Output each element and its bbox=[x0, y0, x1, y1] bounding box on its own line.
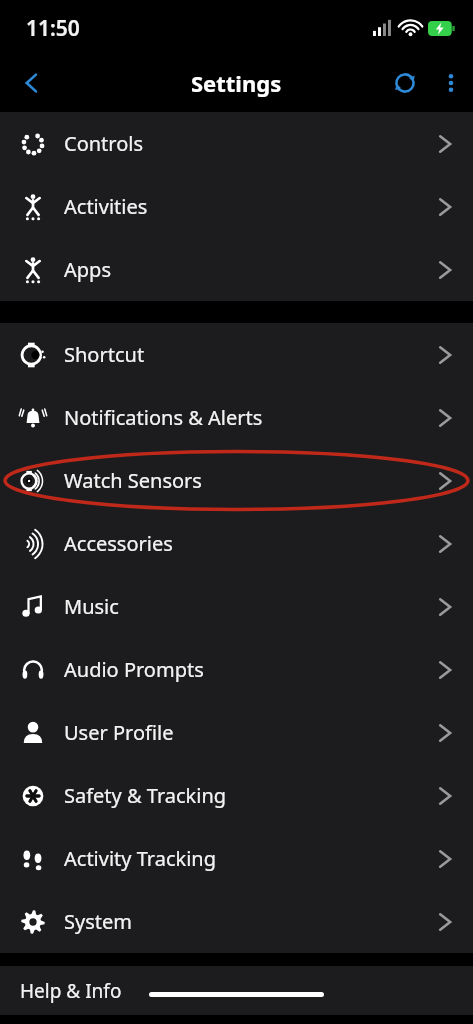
button[interactable]: Audio Prompts bbox=[0, 638, 473, 701]
button[interactable]: Back bbox=[8, 59, 56, 107]
staticText: 11:50 bbox=[26, 14, 80, 43]
button[interactable]: Activities bbox=[0, 175, 473, 238]
button[interactable]: Notifications & Alerts bbox=[0, 386, 473, 449]
button[interactable]: Help & Info bbox=[6, 970, 136, 1012]
staticText: Accessories bbox=[64, 530, 173, 557]
staticText: Shortcut bbox=[64, 341, 145, 368]
button[interactable]: Sync bbox=[381, 59, 429, 107]
staticText: System bbox=[64, 908, 132, 935]
button[interactable]: Safety & Tracking bbox=[0, 764, 473, 827]
staticText: Notifications & Alerts bbox=[64, 404, 263, 431]
staticText: Controls bbox=[64, 130, 144, 157]
staticText: Activity Tracking bbox=[64, 845, 216, 872]
button[interactable]: System bbox=[0, 890, 473, 953]
staticText: Music bbox=[64, 593, 119, 620]
button[interactable]: User Profile bbox=[0, 701, 473, 764]
button[interactable]: Accessories bbox=[0, 512, 473, 575]
button[interactable]: Controls bbox=[0, 112, 473, 175]
button[interactable]: Music bbox=[0, 575, 473, 638]
staticText: Audio Prompts bbox=[64, 656, 204, 683]
button[interactable]: Shortcut bbox=[0, 323, 473, 386]
staticText: Help & Info bbox=[20, 978, 122, 1004]
staticText: Safety & Tracking bbox=[64, 782, 227, 809]
button[interactable]: Activity Tracking bbox=[0, 827, 473, 890]
button[interactable]: Apps bbox=[0, 238, 473, 301]
staticText: Apps bbox=[64, 256, 111, 283]
button[interactable]: More options bbox=[429, 61, 473, 105]
button[interactable]: Watch Sensors bbox=[0, 449, 473, 512]
staticText: Activities bbox=[64, 193, 148, 220]
staticText: Settings bbox=[191, 68, 282, 98]
staticText: User Profile bbox=[64, 719, 174, 746]
staticText: Watch Sensors bbox=[64, 467, 202, 494]
